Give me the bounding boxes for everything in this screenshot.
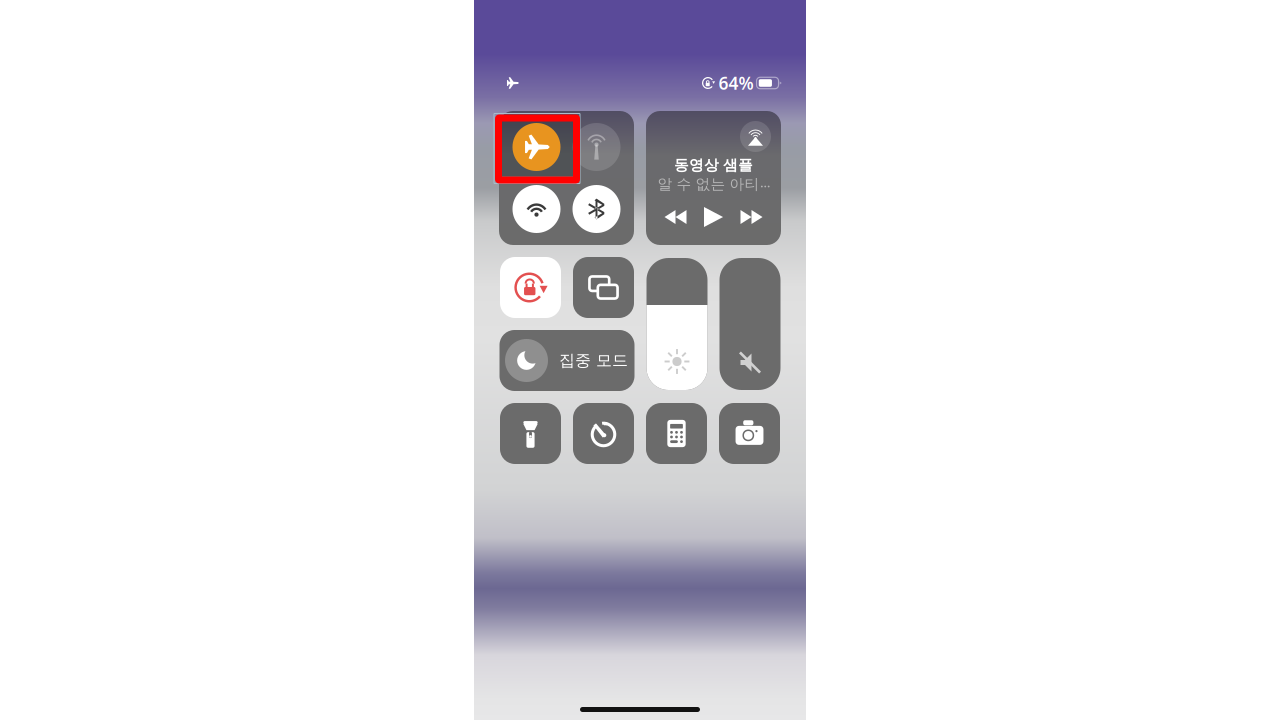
button[interactable]: Screen Mirroring [573,257,634,318]
button[interactable]: Volume [719,258,780,390]
button[interactable]: Flashlight [500,403,561,464]
button[interactable]: Wi-Fi [512,185,560,233]
staticText: 동영상 샘플 [674,156,753,174]
button[interactable]: AirPlay [740,121,771,152]
button[interactable]: Rotation Lock [500,257,561,318]
button[interactable]: Play [694,204,732,230]
staticText: 64% [718,71,753,94]
button[interactable]: 집중 모드 [499,330,634,391]
button[interactable]: Camera [719,403,780,464]
staticText: 알 수 없는 아티 [657,175,759,193]
button[interactable]: Timer [573,403,634,464]
staticText: 집중 모드 [559,351,628,370]
button[interactable]: Calculator [646,403,707,464]
button[interactable]: Brightness [646,258,707,390]
button[interactable]: Airplane Mode [512,123,560,171]
button[interactable]: Cellular Data [572,123,620,171]
button[interactable]: Rewind [656,204,694,230]
button[interactable]: Fast Forward [732,204,770,230]
button[interactable]: Bluetooth [572,185,620,233]
